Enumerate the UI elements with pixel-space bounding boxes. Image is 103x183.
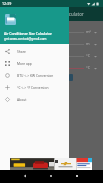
staticText: About (17, 97, 27, 101)
staticText: m (86, 41, 90, 46)
button[interactable]: Back (19, 170, 31, 182)
staticText: Air Conditioner Size Calculator (20, 11, 84, 17)
button[interactable]: °C <-> °F Conversion (0, 81, 69, 93)
staticText: m² (86, 29, 91, 34)
staticText: gnt.www.contact@gmail.com (4, 37, 47, 41)
button[interactable]: Share (0, 45, 69, 57)
button[interactable]: About (0, 93, 69, 105)
staticText: °C (86, 53, 91, 58)
staticText: BTU <-> KW Conversion (17, 73, 54, 77)
staticText: Share (17, 49, 26, 53)
button[interactable]: Advertisement (10, 158, 92, 170)
button[interactable]: BTU <-> KW Conversion (0, 69, 69, 81)
button[interactable]: Recent apps (71, 170, 83, 182)
staticText: Air Conditioner Size Calculator (4, 31, 52, 35)
staticText: °C (86, 65, 91, 70)
button[interactable]: Home (45, 170, 57, 182)
button[interactable]: More app (0, 57, 69, 69)
staticText: °C <-> °F Conversion (17, 85, 49, 89)
staticText: More app (17, 61, 32, 65)
staticText: 12:39 (2, 1, 12, 6)
